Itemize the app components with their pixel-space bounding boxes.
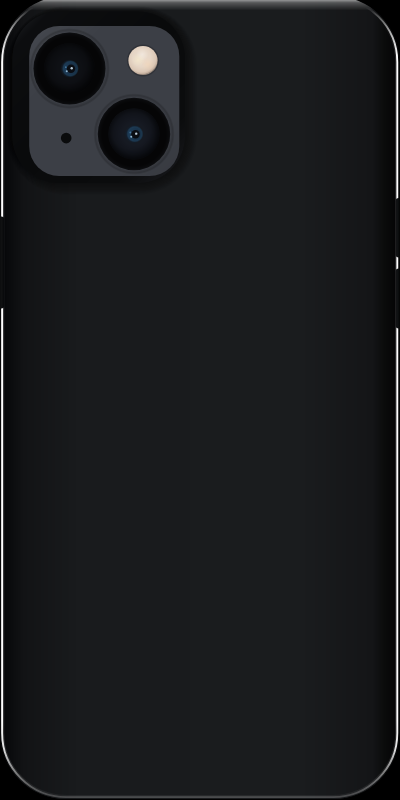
button[interactable]: Black phone case product photo <box>0 0 400 800</box>
